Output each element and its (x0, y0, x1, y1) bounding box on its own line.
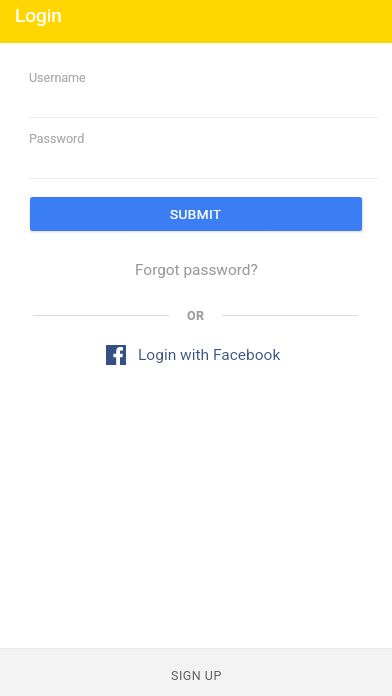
button[interactable]: Username (29, 60, 378, 118)
button[interactable]: SUBMIT (30, 197, 362, 231)
staticText: Password (29, 131, 85, 146)
staticText: OR (187, 308, 205, 323)
staticText: SUBMIT (170, 206, 222, 222)
staticText: Login (15, 4, 62, 26)
button[interactable]: Password (29, 121, 378, 179)
staticText: Username (29, 70, 86, 85)
button[interactable]: Login with Facebook (106, 341, 281, 369)
staticText: SIGN UP (171, 668, 222, 683)
button[interactable]: SIGN UP (0, 648, 392, 696)
staticText: Login with Facebook (138, 346, 281, 364)
button[interactable]: Forgot password? (120, 257, 272, 283)
staticText: Forgot password? (135, 261, 258, 279)
